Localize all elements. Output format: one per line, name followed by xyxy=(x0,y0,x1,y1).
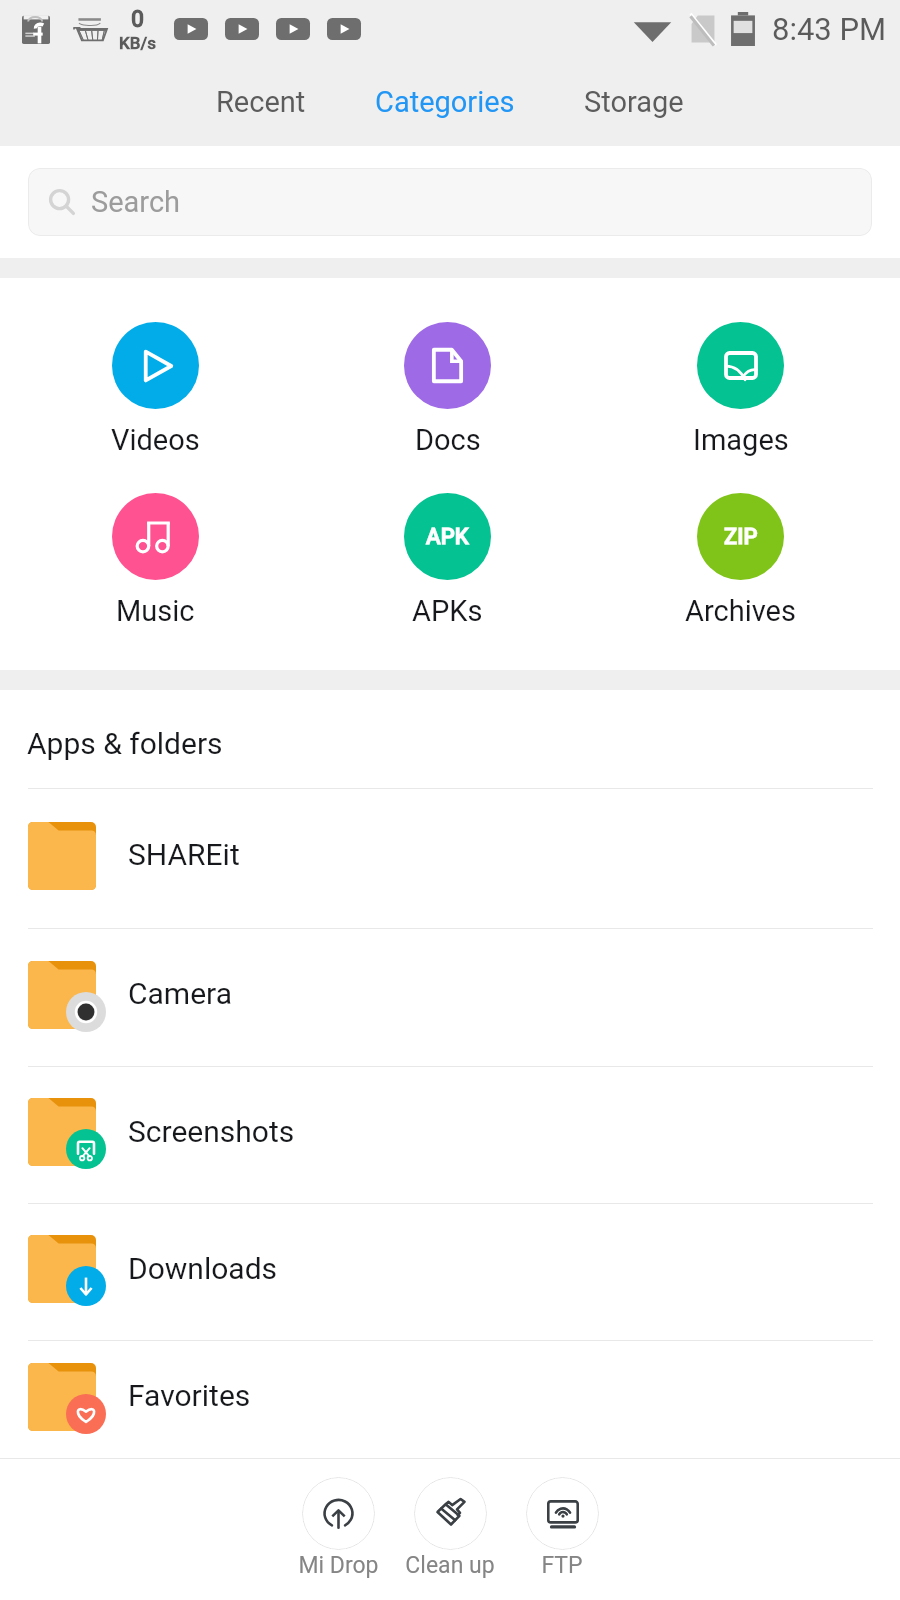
staticText: 8:43 PM xyxy=(772,11,887,47)
staticText: Recent xyxy=(216,85,306,119)
staticText: Camera xyxy=(128,976,232,1011)
staticText: SHAREit xyxy=(128,837,240,872)
other: FTP xyxy=(526,1477,599,1550)
staticText: Screenshots xyxy=(128,1114,295,1149)
staticText: Storage xyxy=(584,85,684,119)
button[interactable]: Categories xyxy=(369,71,521,133)
button[interactable]: Camera xyxy=(0,929,900,1066)
button[interactable]: Downloads xyxy=(0,1204,900,1340)
staticText: 0 xyxy=(131,6,145,33)
staticText: Archives xyxy=(685,594,796,628)
staticText: Search xyxy=(91,185,181,219)
staticText: Clean up xyxy=(405,1552,495,1579)
button[interactable]: Recent xyxy=(210,71,312,133)
staticText: Mi Drop xyxy=(298,1552,379,1579)
button[interactable]: SHAREit xyxy=(0,789,900,928)
staticText: Favorites xyxy=(128,1378,251,1413)
button[interactable]: Storage xyxy=(578,71,690,133)
staticText: Downloads xyxy=(128,1251,278,1286)
staticText: Videos xyxy=(111,423,200,457)
button[interactable]: Mi Drop xyxy=(282,1459,394,1579)
staticText: Docs xyxy=(415,423,481,457)
staticText: Categories xyxy=(375,85,515,119)
staticText: APKs xyxy=(412,594,483,628)
button[interactable]: Docs xyxy=(301,322,594,457)
staticText: Images xyxy=(693,423,789,457)
button[interactable]: Search xyxy=(28,168,872,236)
staticText: FTP xyxy=(541,1552,583,1579)
staticText: KB/s xyxy=(119,33,156,53)
staticText: ZIP xyxy=(724,524,758,550)
button[interactable]: ZIP xyxy=(594,493,887,628)
other: Clean up xyxy=(414,1477,487,1550)
button[interactable]: Music xyxy=(9,493,301,628)
other: Mi Drop xyxy=(302,1477,375,1550)
button[interactable]: APK xyxy=(301,493,594,628)
staticText: APK xyxy=(426,524,469,550)
button[interactable]: Favorites xyxy=(0,1341,900,1458)
button[interactable]: Images xyxy=(594,322,887,457)
button[interactable]: Clean up xyxy=(394,1459,506,1579)
staticText: Music xyxy=(116,594,195,628)
button[interactable]: Screenshots xyxy=(0,1067,900,1203)
button[interactable]: Videos xyxy=(9,322,301,457)
button[interactable]: FTP xyxy=(506,1459,618,1579)
staticText: Apps & folders xyxy=(27,726,223,761)
